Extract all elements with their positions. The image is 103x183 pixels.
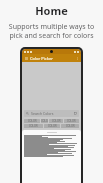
staticText: COLOR bbox=[28, 119, 37, 123]
staticText: Home bbox=[35, 3, 68, 18]
staticText: Color Picker bbox=[30, 56, 53, 61]
button[interactable]: Open navigation menu bbox=[24, 56, 28, 60]
button[interactable]: COLOR bbox=[64, 119, 79, 123]
staticText: COLOR bbox=[66, 124, 75, 128]
staticText: COLOR bbox=[52, 119, 61, 123]
button[interactable]: COLOR bbox=[24, 124, 43, 128]
button[interactable]: Search Colors bbox=[24, 110, 79, 117]
staticText: COLOR bbox=[41, 119, 48, 123]
button[interactable]: COLOR bbox=[44, 124, 60, 128]
staticText: COLOR bbox=[48, 124, 57, 128]
staticText: COLOR bbox=[67, 119, 76, 123]
button[interactable]: More options bbox=[75, 56, 79, 60]
staticText: Search Colors bbox=[31, 111, 54, 116]
button[interactable]: COLOR bbox=[61, 124, 79, 128]
staticText: COLOR bbox=[29, 124, 38, 128]
button[interactable]: COLOR bbox=[24, 119, 40, 123]
button[interactable]: Filter colors bbox=[74, 112, 77, 115]
button[interactable]: COLOR bbox=[41, 119, 48, 123]
button[interactable]: COLOR bbox=[49, 119, 63, 123]
staticText: Supports multiple ways to pick and searc… bbox=[3, 22, 100, 40]
